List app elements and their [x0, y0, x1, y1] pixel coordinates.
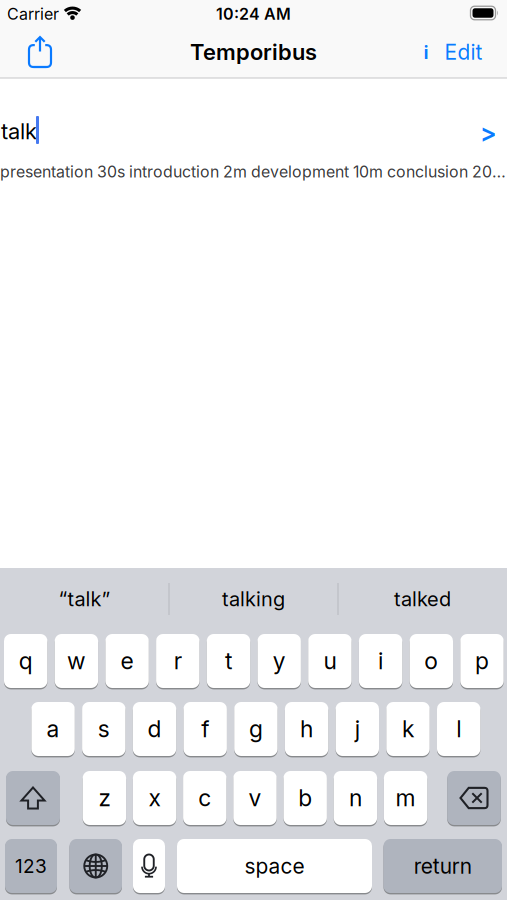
staticText: b: [298, 784, 312, 812]
staticText: r: [174, 647, 182, 675]
staticText: i: [378, 647, 383, 675]
button[interactable]: Info: [423, 41, 428, 64]
staticText: q: [19, 647, 33, 675]
button[interactable]: m: [384, 770, 427, 826]
staticText: x: [149, 784, 161, 812]
staticText: l: [456, 715, 461, 743]
staticText: presentation 30s introduction 2m develop…: [0, 162, 506, 181]
staticText: p: [475, 647, 489, 675]
button[interactable]: a: [31, 701, 75, 757]
button[interactable]: r: [156, 633, 199, 689]
button[interactable]: n: [334, 770, 377, 826]
button[interactable]: l: [437, 701, 480, 757]
staticText: c: [198, 784, 211, 812]
button[interactable]: q: [4, 633, 47, 689]
staticText: y: [273, 647, 286, 675]
button[interactable]: return: [383, 838, 502, 894]
staticText: j: [355, 715, 360, 743]
staticText: v: [248, 784, 261, 812]
button[interactable]: talking: [222, 587, 285, 611]
button[interactable]: k: [386, 701, 430, 757]
staticText: talked: [394, 587, 451, 611]
staticText: i: [423, 41, 428, 64]
staticText: w: [67, 647, 86, 675]
staticText: Temporibus: [190, 39, 317, 65]
button[interactable]: “talk”: [58, 587, 110, 611]
staticText: g: [249, 715, 263, 743]
button[interactable]: Edit: [444, 39, 482, 65]
staticText: k: [402, 715, 414, 743]
button[interactable]: s: [82, 701, 125, 757]
staticText: u: [323, 647, 336, 675]
button[interactable]: Shift: [6, 770, 60, 826]
button[interactable]: g: [234, 701, 278, 757]
button[interactable]: z: [83, 770, 126, 826]
staticText: space: [244, 853, 304, 879]
button[interactable]: d: [133, 701, 176, 757]
staticText: s: [98, 715, 110, 743]
staticText: talking: [222, 587, 285, 611]
button[interactable]: p: [460, 633, 504, 689]
staticText: h: [300, 715, 313, 743]
button[interactable]: i: [359, 633, 402, 689]
button[interactable]: space: [177, 838, 372, 894]
button[interactable]: t: [207, 633, 250, 689]
button[interactable]: h: [285, 701, 328, 757]
button[interactable]: u: [308, 633, 352, 689]
staticText: “talk”: [58, 587, 110, 611]
staticText: f: [201, 715, 209, 743]
staticText: d: [147, 715, 161, 743]
staticText: e: [121, 647, 134, 675]
button[interactable]: o: [410, 633, 453, 689]
staticText: return: [414, 853, 472, 879]
button[interactable]: e: [105, 633, 149, 689]
button[interactable]: w: [55, 633, 98, 689]
button[interactable]: Dictate: [133, 838, 165, 894]
button[interactable]: x: [133, 770, 176, 826]
button[interactable]: Next: [480, 118, 497, 148]
button[interactable]: Delete: [447, 770, 501, 826]
staticText: 123: [15, 854, 47, 877]
button[interactable]: y: [257, 633, 301, 689]
button[interactable]: j: [336, 701, 379, 757]
staticText: Edit: [444, 39, 482, 65]
button[interactable]: talked: [394, 587, 451, 611]
button[interactable]: Numbers: [5, 838, 57, 894]
staticText: t: [225, 647, 232, 675]
button[interactable]: c: [183, 770, 226, 826]
staticText: a: [47, 715, 60, 743]
button[interactable]: v: [233, 770, 277, 826]
staticText: n: [349, 784, 362, 812]
staticText: Carrier: [7, 4, 59, 24]
staticText: m: [396, 784, 416, 812]
button[interactable]: f: [183, 701, 227, 757]
staticText: z: [98, 784, 110, 812]
staticText: 10:24 AM: [216, 4, 291, 24]
button[interactable]: Share: [29, 36, 51, 67]
staticText: >: [480, 118, 497, 148]
button[interactable]: b: [283, 770, 327, 826]
staticText: talk: [1, 118, 37, 145]
staticText: o: [424, 647, 438, 675]
button[interactable]: Next keyboard: [69, 838, 122, 894]
